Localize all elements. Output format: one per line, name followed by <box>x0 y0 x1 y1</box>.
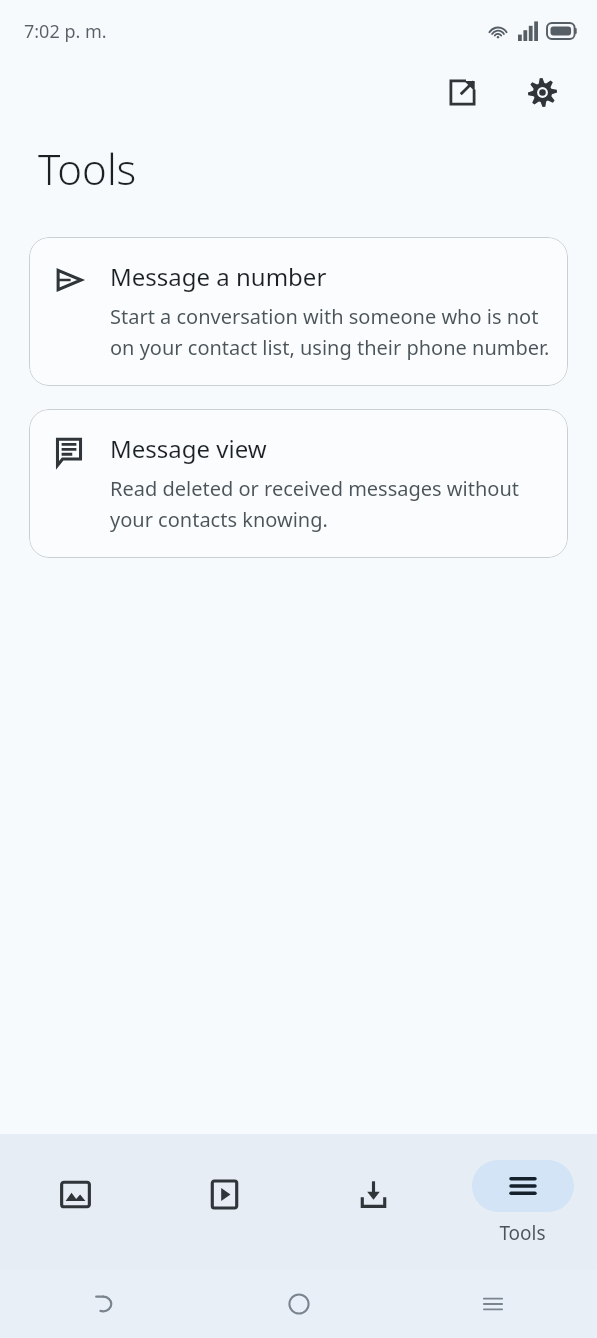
staticText: Tools <box>499 1220 546 1246</box>
staticText: Read deleted or received messages withou… <box>110 475 550 532</box>
button[interactable]: Images <box>0 1134 150 1270</box>
button[interactable]: Message a number <box>29 237 568 386</box>
button[interactable]: Videos <box>150 1134 299 1270</box>
button[interactable]: Settings <box>515 65 569 119</box>
staticText: Message view <box>110 432 267 465</box>
button[interactable]: Home <box>275 1280 323 1328</box>
button[interactable]: Open in new window <box>435 65 489 119</box>
button[interactable]: Downloads <box>299 1134 448 1270</box>
staticText: Message a number <box>110 260 327 293</box>
staticText: Tools <box>38 140 137 197</box>
button[interactable]: Back <box>80 1280 128 1328</box>
staticText: Start a conversation with someone who is… <box>110 303 550 360</box>
staticText: 7:02 p. m. <box>24 19 107 44</box>
button[interactable]: Recent apps <box>469 1280 517 1328</box>
button[interactable]: Tools <box>448 1134 597 1270</box>
button[interactable]: Message view <box>29 409 568 558</box>
